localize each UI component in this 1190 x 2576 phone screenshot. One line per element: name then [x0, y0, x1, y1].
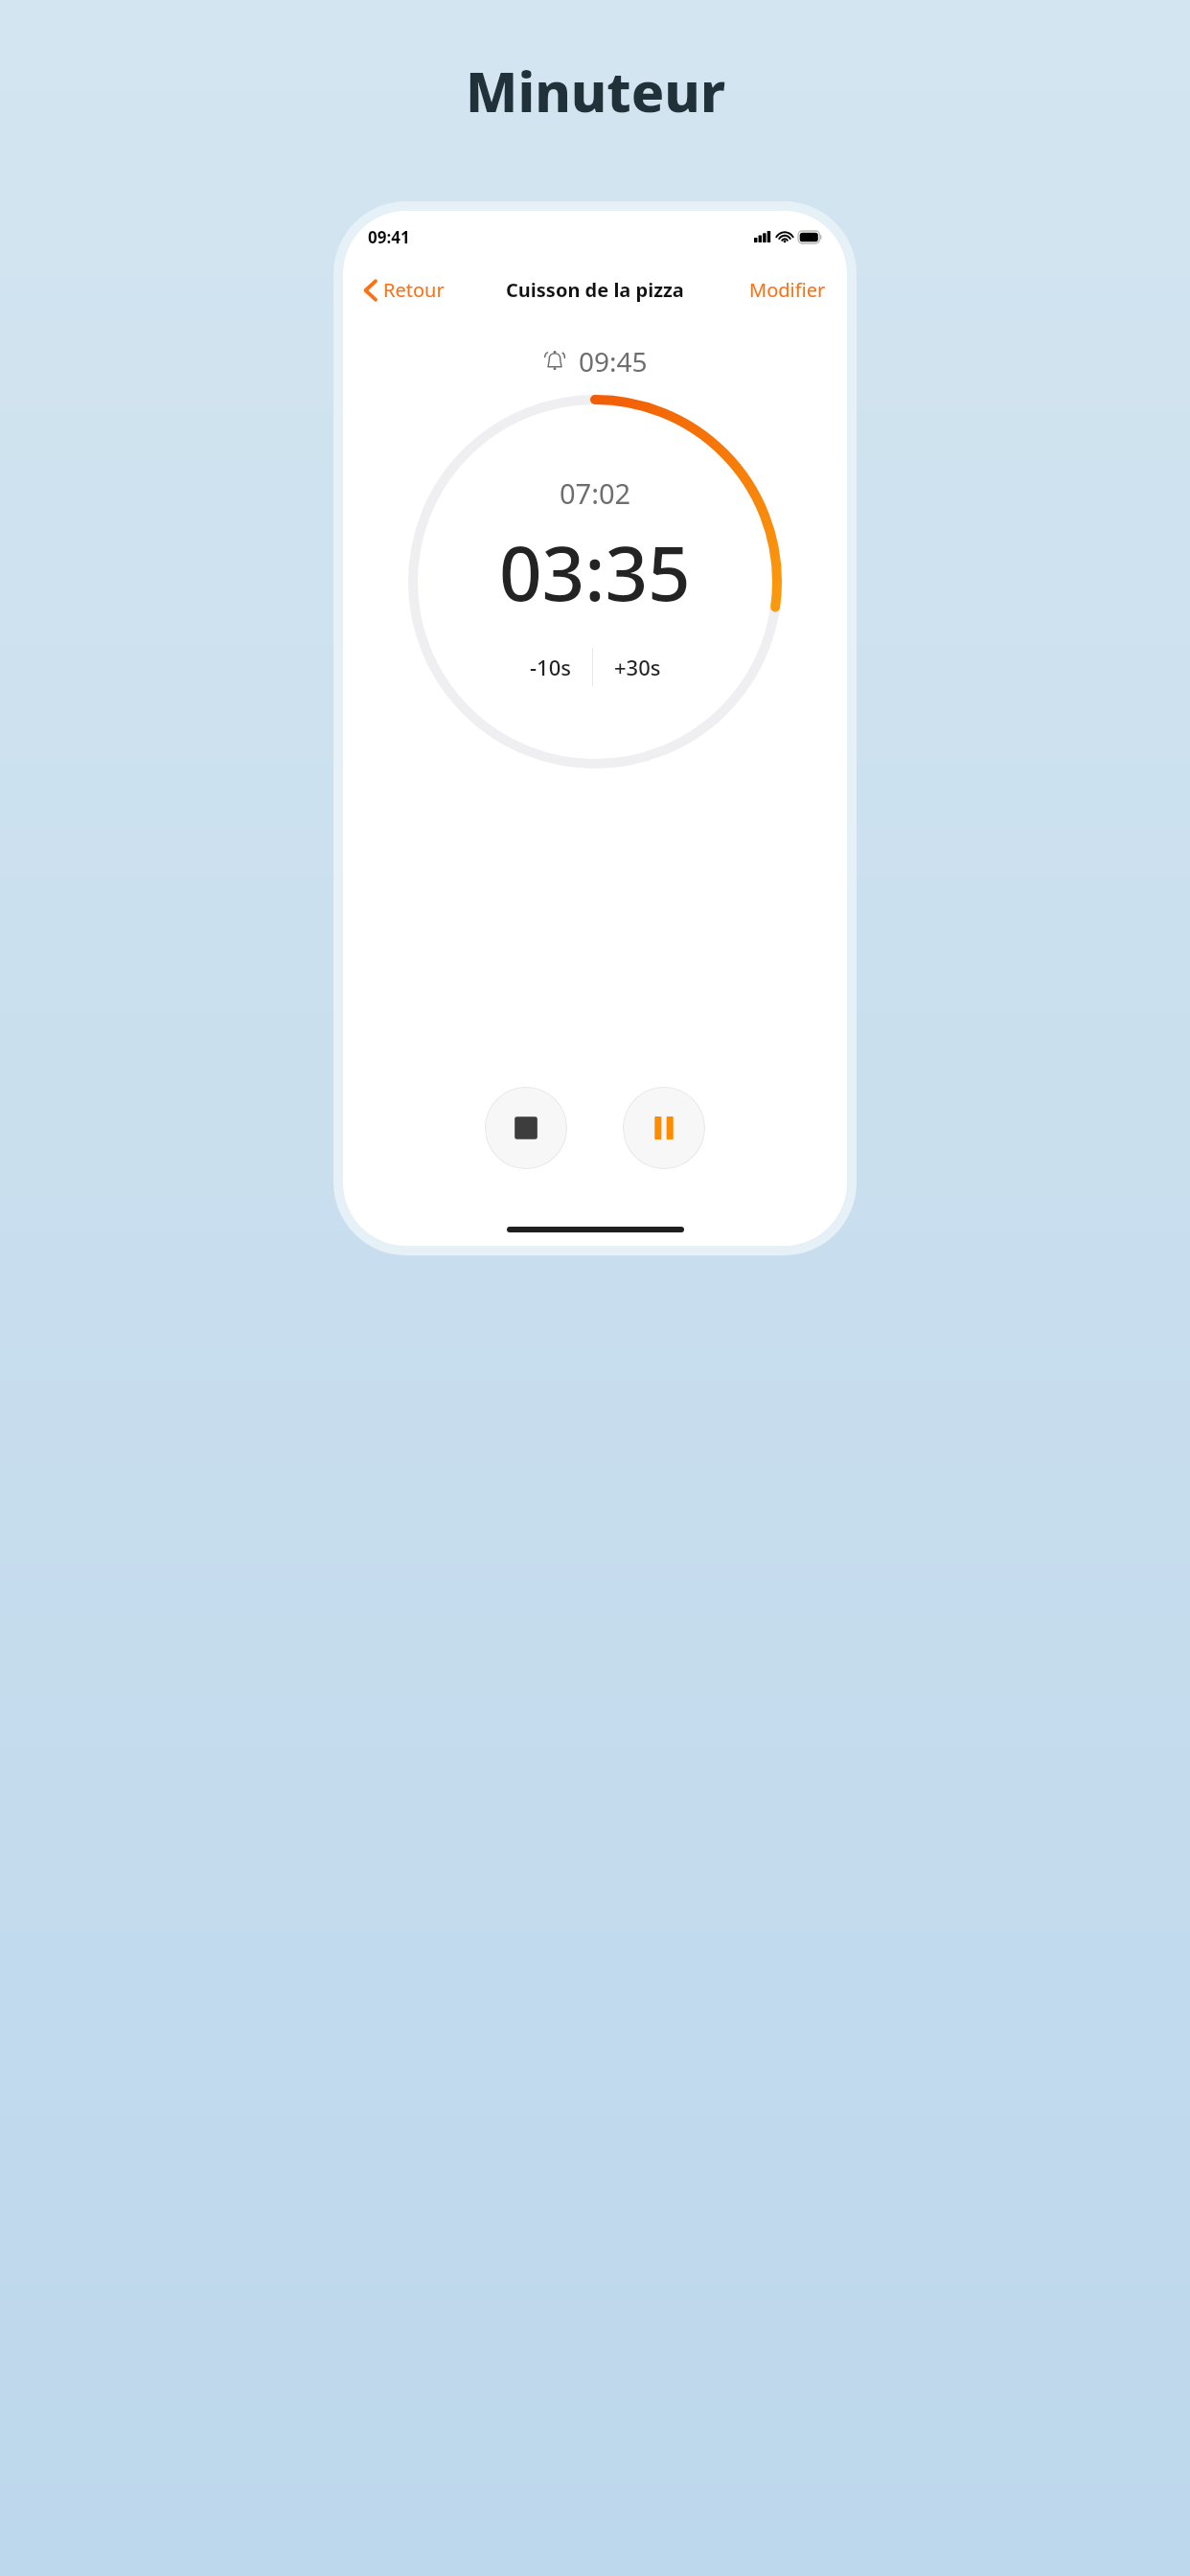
button[interactable]: Retour: [358, 273, 450, 307]
staticText: 09:41: [368, 226, 410, 248]
staticText: Modifier: [749, 277, 826, 303]
staticText: Minuteur: [466, 54, 725, 128]
button[interactable]: Modifier: [744, 273, 832, 307]
staticText: 09:45: [579, 343, 648, 379]
button[interactable]: -10s: [505, 644, 592, 690]
button[interactable]: Pause: [623, 1087, 705, 1169]
staticText: 07:02: [560, 474, 631, 512]
staticText: -10s: [530, 653, 571, 681]
staticText: Cuisson de la pizza: [506, 277, 684, 303]
staticText: Retour: [383, 277, 445, 303]
staticText: +30s: [614, 653, 661, 681]
staticText: 03:35: [499, 521, 691, 623]
button[interactable]: +30s: [593, 644, 686, 690]
button[interactable]: Arrêter: [485, 1087, 567, 1169]
